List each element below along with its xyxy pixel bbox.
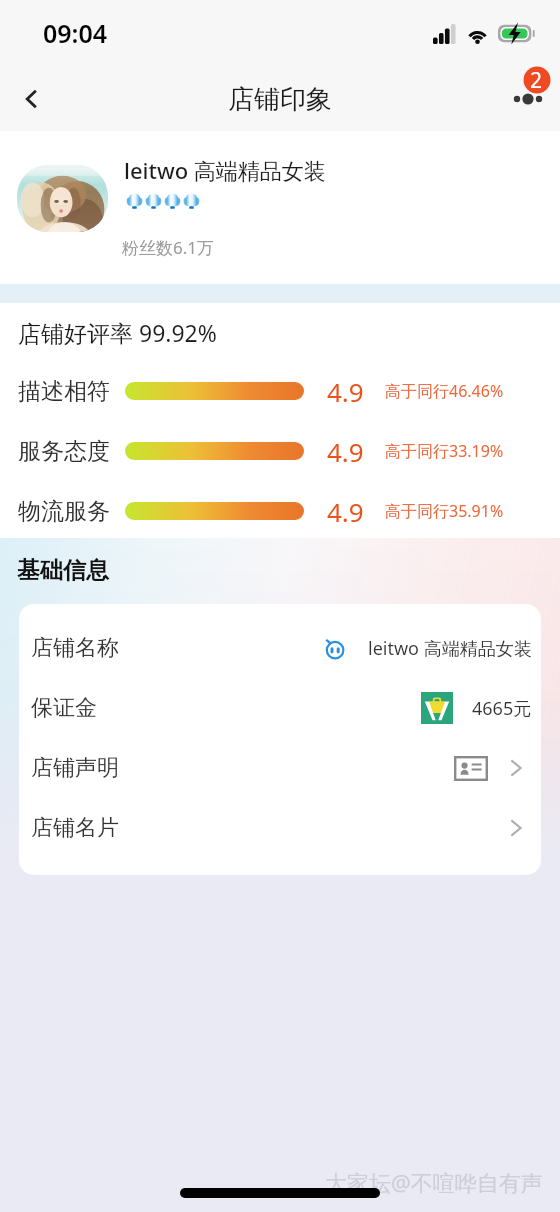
staticText: 店铺名称 [31,634,119,662]
staticText: 4.9 [327,434,364,469]
staticText: 店铺印象 [228,83,332,116]
staticText: leitwo 高端精品女装 [368,636,532,661]
button[interactable]: Back [8,75,56,123]
staticText: 2 [530,66,543,95]
staticText: 服务态度 [18,437,110,466]
staticText: 粉丝数6.1万 [122,236,215,259]
button[interactable]: 店铺声明 [19,738,541,798]
staticText: 物流服务 [18,497,110,526]
staticText: 高于同行46.46% [385,380,504,402]
staticText: 4.9 [327,494,364,529]
staticText: 基础信息 [17,556,109,585]
staticText: 店铺名片 [31,814,119,842]
button[interactable]: 店铺名片 [19,798,541,858]
staticText: 高于同行35.91% [385,500,504,522]
staticText: 4.9 [327,374,364,409]
staticText: 保证金 [31,694,97,722]
staticText: 店铺好评率 99.92% [18,317,217,348]
staticText: 09:04 [43,16,108,50]
staticText: 店铺声明 [31,754,119,782]
staticText: 高于同行33.19% [385,440,504,462]
staticText: 描述相符 [18,377,110,406]
staticText: 大家坛@不喧哗自有声 [325,1167,543,1197]
button[interactable]: More options [504,63,556,111]
staticText: 4665元 [472,696,532,721]
button[interactable]: 店铺名称 [19,618,541,678]
staticText: leitwo 高端精品女装 [124,155,326,185]
button[interactable]: 保证金 [19,678,541,738]
